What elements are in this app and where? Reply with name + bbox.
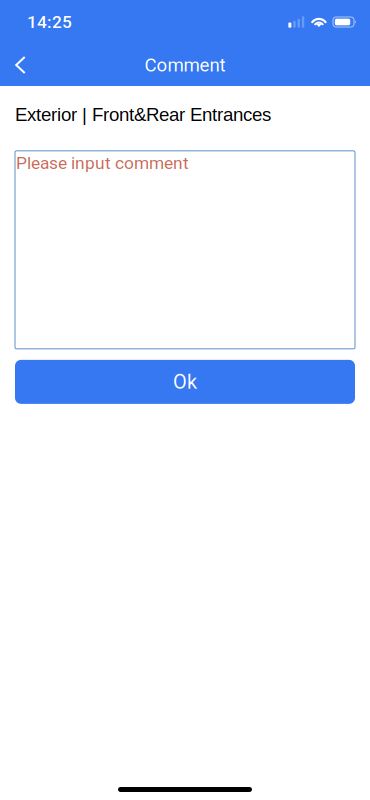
staticText: Ok — [173, 370, 197, 393]
staticText: Comment — [144, 54, 225, 76]
staticText: Please input comment — [16, 153, 189, 173]
button[interactable]: Please input comment — [15, 151, 355, 349]
staticText: 14:25 — [27, 12, 72, 32]
button[interactable]: Ok — [15, 360, 355, 404]
staticText: Exterior | Front&Rear Entrances — [15, 104, 271, 125]
button[interactable]: Back — [0, 44, 42, 86]
